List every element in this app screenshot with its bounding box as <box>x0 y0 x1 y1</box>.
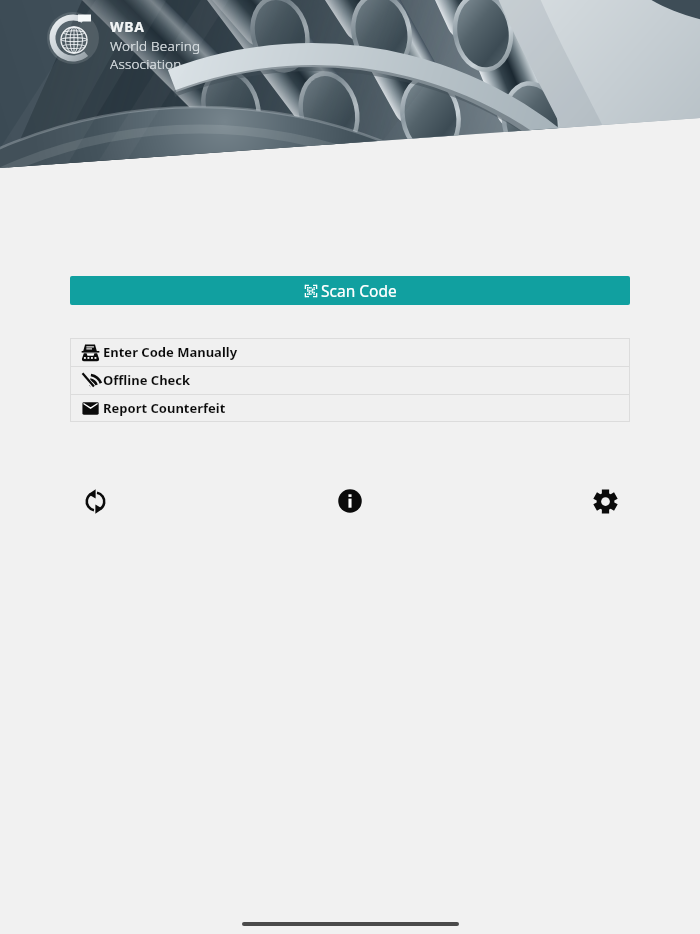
button[interactable]: Enter Code Manually <box>70 338 630 366</box>
staticText: Enter Code Manually <box>103 343 238 361</box>
button[interactable]: Settings <box>585 481 625 521</box>
staticText: Association <box>110 55 182 73</box>
staticText: WBA <box>110 17 145 36</box>
button[interactable]: Report Counterfeit <box>70 394 630 422</box>
staticText: World Bearing <box>110 37 201 55</box>
button[interactable]: Offline Check <box>70 366 630 394</box>
staticText: Report Counterfeit <box>103 399 226 417</box>
button[interactable]: Sync <box>75 481 115 521</box>
staticText: Offline Check <box>103 371 191 389</box>
button[interactable]: Scan Code <box>70 276 630 305</box>
button[interactable]: Info <box>330 481 370 521</box>
staticText: Scan Code <box>321 280 397 301</box>
